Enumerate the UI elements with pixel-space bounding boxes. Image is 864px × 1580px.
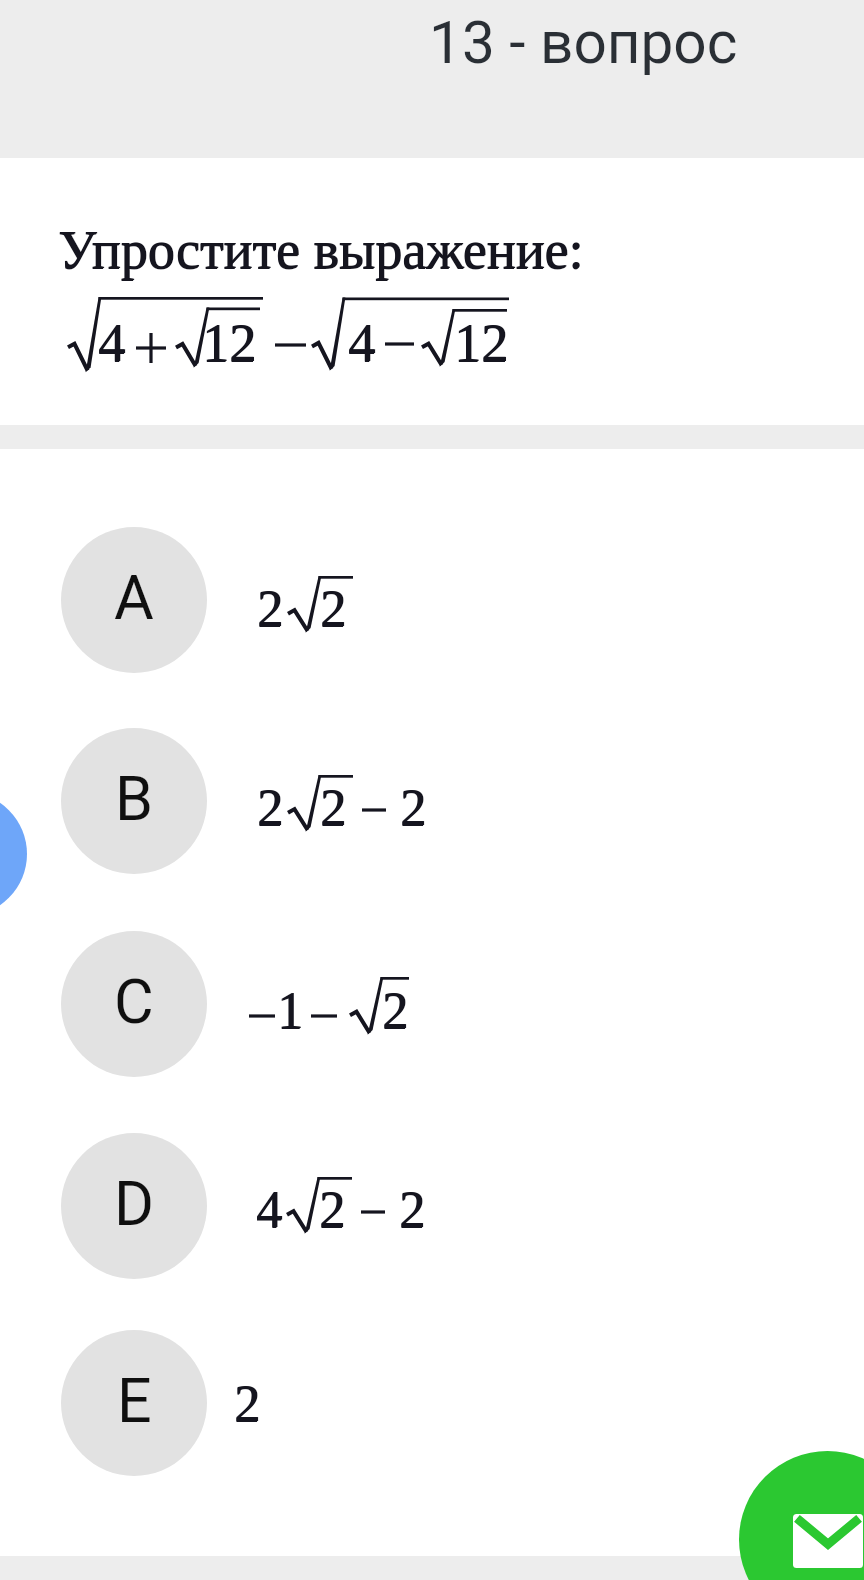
staticText: 12 xyxy=(202,314,256,374)
staticText: 2 xyxy=(258,779,284,837)
staticText: 2 xyxy=(400,1181,426,1239)
staticText: Упростите выражение: xyxy=(59,220,585,280)
staticText: 2 xyxy=(234,1376,260,1434)
staticText: 1 xyxy=(277,983,303,1041)
staticText: 2 xyxy=(320,580,346,638)
staticText: 2 xyxy=(320,581,346,639)
staticText: 2 xyxy=(400,779,426,837)
button[interactable]: E xyxy=(0,1313,864,1493)
staticText: 12 xyxy=(203,313,257,373)
staticText: 2 xyxy=(257,580,283,638)
staticText: 2 xyxy=(321,779,347,837)
staticText: 2 xyxy=(319,1182,345,1240)
staticText: 2 xyxy=(257,779,283,837)
staticText: 4 xyxy=(98,314,125,374)
staticText: 12 xyxy=(454,313,508,373)
staticText: 4 xyxy=(257,1181,283,1239)
staticText: 4 xyxy=(256,1181,282,1239)
staticText: 4 xyxy=(348,314,375,374)
staticText: 2 xyxy=(400,780,426,838)
staticText: D xyxy=(114,1168,155,1239)
button[interactable]: Send message xyxy=(739,1451,864,1580)
staticText: 4 xyxy=(349,313,376,373)
staticText: 2 xyxy=(258,580,284,638)
staticText: E xyxy=(117,1365,152,1436)
staticText: 2 xyxy=(382,983,408,1041)
staticText: 12 xyxy=(455,313,509,373)
staticText: C xyxy=(114,966,154,1037)
staticText: 2 xyxy=(235,1375,261,1433)
staticText: 12 xyxy=(202,313,256,373)
staticText: 4 xyxy=(348,313,375,373)
button[interactable]: C xyxy=(0,914,864,1094)
staticText: 2 xyxy=(383,982,409,1040)
staticText: 2 xyxy=(321,580,347,638)
staticText: 2 xyxy=(320,1181,346,1239)
staticText: 2 xyxy=(320,779,346,837)
staticText: 2 xyxy=(399,1182,425,1240)
button[interactable]: A xyxy=(0,510,864,690)
staticText: 2 xyxy=(234,1375,260,1433)
staticText: 1 xyxy=(277,982,303,1040)
staticText: 4 xyxy=(98,313,125,373)
staticText: 2 xyxy=(399,1181,425,1239)
staticText: 2 xyxy=(319,1181,345,1239)
staticText: Упростите выражение: xyxy=(58,220,584,280)
staticText: B xyxy=(115,763,154,834)
staticText: 2 xyxy=(257,581,283,639)
button[interactable]: B xyxy=(0,711,864,891)
staticText: Упростите выражение: xyxy=(58,221,584,281)
staticText: 2 xyxy=(320,780,346,838)
staticText: 2 xyxy=(401,779,427,837)
staticText: 12 xyxy=(454,314,508,374)
staticText: 13 - вопрос xyxy=(429,9,738,78)
staticText: 1 xyxy=(278,982,304,1040)
staticText: 2 xyxy=(382,982,408,1040)
staticText: A xyxy=(114,562,154,633)
staticText: 2 xyxy=(257,780,283,838)
button[interactable]: D xyxy=(0,1116,864,1296)
staticText: 4 xyxy=(99,313,126,373)
staticText: 4 xyxy=(256,1182,282,1240)
